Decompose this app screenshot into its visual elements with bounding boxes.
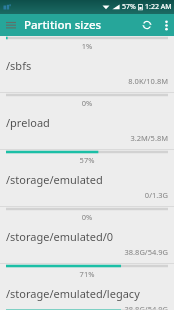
staticText: 38.8G/54.9G (0, 247, 168, 257)
staticText: 0% (0, 212, 174, 222)
staticText: 0% (0, 98, 174, 108)
button[interactable]: 57% (0, 149, 174, 206)
staticText: 8.0K/10.8M (0, 76, 168, 86)
staticText: /preload (6, 115, 174, 130)
staticText: /storage/emulated (6, 172, 174, 187)
button[interactable]: Open navigation drawer (0, 14, 22, 36)
button[interactable]: More options (158, 14, 174, 36)
staticText: 0/1.3G (0, 190, 168, 200)
button[interactable]: 0% (0, 92, 174, 149)
button[interactable]: Refresh (136, 14, 158, 36)
staticText: 38.8G/54.9G (0, 304, 168, 310)
staticText: 1% (0, 41, 174, 51)
staticText: 71% (0, 269, 174, 279)
button[interactable]: 71% (0, 263, 174, 310)
staticText: Partition sizes (24, 17, 102, 33)
staticText: 57% (0, 155, 174, 165)
staticText: 3.2M/5.8M (0, 133, 168, 143)
button[interactable]: 0% (0, 206, 174, 263)
staticText: 57% (122, 2, 136, 12)
staticText: 1:22 AM (145, 2, 172, 12)
staticText: /sbfs (6, 58, 174, 73)
staticText: /storage/emulated/legacy (6, 286, 174, 301)
button[interactable]: 1% (0, 36, 174, 92)
staticText: /storage/emulated/0 (6, 229, 174, 244)
